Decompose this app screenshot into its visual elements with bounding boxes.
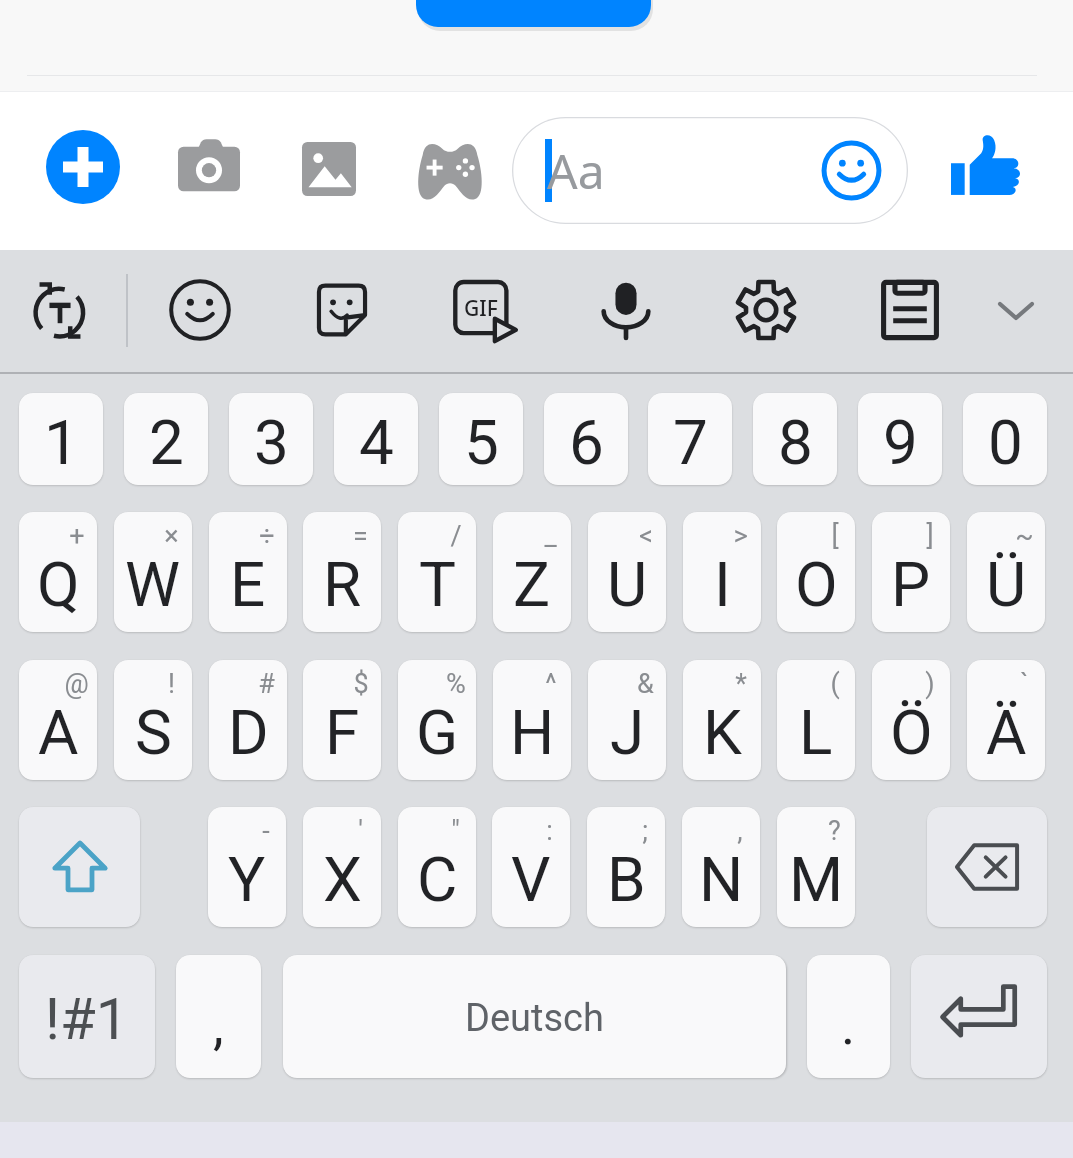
button[interactable]: 5 bbox=[439, 393, 523, 485]
staticText: T bbox=[419, 548, 456, 621]
button[interactable]: 6 bbox=[544, 393, 628, 485]
button[interactable]: Settings bbox=[726, 270, 806, 350]
staticText: F bbox=[325, 696, 360, 769]
button[interactable]: Clipboard bbox=[870, 270, 950, 350]
button[interactable]: % bbox=[398, 660, 476, 780]
staticText: 4 bbox=[359, 406, 394, 479]
button[interactable]: . bbox=[807, 955, 890, 1078]
button[interactable]: ^ bbox=[493, 660, 571, 780]
staticText: > bbox=[733, 520, 748, 552]
button[interactable]: 8 bbox=[753, 393, 837, 485]
button[interactable]: ~ bbox=[967, 512, 1045, 632]
button[interactable]: # bbox=[209, 660, 287, 780]
staticText: H bbox=[510, 696, 555, 769]
button[interactable]: " bbox=[398, 807, 476, 927]
staticText: Ä bbox=[986, 696, 1027, 769]
staticText: & bbox=[637, 668, 654, 700]
button[interactable]: / bbox=[398, 512, 476, 632]
button[interactable]: Voice input bbox=[586, 270, 666, 350]
button[interactable]: < bbox=[588, 512, 666, 632]
button[interactable]: Translate bbox=[20, 270, 100, 350]
staticText: Aa bbox=[547, 138, 605, 203]
button[interactable]: Emoji bbox=[821, 140, 882, 201]
button[interactable]: $ bbox=[303, 660, 381, 780]
staticText: × bbox=[164, 520, 179, 552]
button[interactable]: 3 bbox=[229, 393, 313, 485]
button[interactable]: Games bbox=[411, 130, 489, 208]
button[interactable]: Emoji bbox=[160, 270, 240, 350]
staticText: ` bbox=[1020, 668, 1029, 700]
button[interactable]: 4 bbox=[334, 393, 418, 485]
staticText: : bbox=[546, 815, 553, 847]
staticText: M bbox=[789, 843, 844, 916]
staticText: " bbox=[451, 815, 460, 847]
staticText: _ bbox=[544, 520, 557, 552]
button[interactable]: ] bbox=[872, 512, 950, 632]
button[interactable]: _ bbox=[493, 512, 571, 632]
button[interactable]: Aa bbox=[512, 117, 908, 224]
button[interactable]: Stickers bbox=[302, 270, 382, 350]
button[interactable]: GIF bbox=[444, 270, 524, 350]
staticText: Deutsch bbox=[465, 996, 604, 1041]
staticText: * bbox=[735, 668, 747, 700]
staticText: U bbox=[607, 548, 648, 621]
button[interactable]: 1 bbox=[19, 393, 103, 485]
button[interactable]: ` bbox=[967, 660, 1045, 780]
staticText: L bbox=[799, 696, 833, 769]
staticText: 6 bbox=[569, 406, 604, 479]
button[interactable]: Camera bbox=[170, 130, 248, 208]
staticText: X bbox=[323, 843, 362, 916]
button[interactable]: × bbox=[114, 512, 192, 632]
button[interactable]: = bbox=[303, 512, 381, 632]
staticText: Z bbox=[513, 548, 551, 621]
button[interactable]: [ bbox=[777, 512, 855, 632]
staticText: # bbox=[258, 668, 275, 700]
button[interactable]: !#1 bbox=[19, 955, 155, 1078]
staticText: N bbox=[699, 843, 744, 916]
button[interactable] bbox=[911, 955, 1047, 1078]
button[interactable] bbox=[927, 807, 1047, 927]
staticText: G bbox=[416, 696, 459, 769]
staticText: @ bbox=[64, 668, 89, 700]
button[interactable]: ; bbox=[587, 807, 665, 927]
button[interactable]: Send like bbox=[944, 126, 1030, 212]
button[interactable]: ? bbox=[777, 807, 855, 927]
button[interactable]: & bbox=[588, 660, 666, 780]
staticText: , bbox=[213, 994, 224, 1057]
staticText: K bbox=[703, 696, 742, 769]
staticText: + bbox=[69, 520, 85, 552]
button[interactable]: * bbox=[683, 660, 761, 780]
staticText: ' bbox=[358, 815, 363, 847]
staticText: 1 bbox=[44, 406, 79, 479]
button[interactable]: 7 bbox=[648, 393, 732, 485]
button[interactable]: Gallery bbox=[290, 130, 368, 208]
staticText: $ bbox=[353, 668, 369, 700]
button[interactable]: More actions bbox=[46, 130, 120, 204]
staticText: Y bbox=[228, 843, 266, 916]
staticText: ! bbox=[168, 668, 175, 700]
button[interactable]: ) bbox=[872, 660, 950, 780]
button[interactable]: Hide keyboard bbox=[976, 270, 1056, 350]
staticText: . bbox=[841, 994, 856, 1057]
button[interactable]: - bbox=[208, 807, 286, 927]
button[interactable]: @ bbox=[19, 660, 97, 780]
button[interactable]: 2 bbox=[124, 393, 208, 485]
button[interactable]: Deutsch bbox=[283, 955, 786, 1078]
staticText: A bbox=[38, 696, 79, 769]
button[interactable]: 0 bbox=[963, 393, 1047, 485]
button[interactable]: : bbox=[492, 807, 570, 927]
button[interactable]: ' bbox=[303, 807, 381, 927]
staticText: Ö bbox=[890, 696, 933, 769]
button[interactable] bbox=[19, 807, 140, 927]
staticText: 5 bbox=[464, 406, 499, 479]
button[interactable]: ! bbox=[114, 660, 192, 780]
button[interactable]: , bbox=[176, 955, 261, 1078]
button[interactable]: + bbox=[19, 512, 97, 632]
staticText: O bbox=[795, 548, 838, 621]
button[interactable]: > bbox=[683, 512, 761, 632]
staticText: Ü bbox=[986, 548, 1027, 621]
button[interactable]: , bbox=[682, 807, 760, 927]
button[interactable]: ÷ bbox=[209, 512, 287, 632]
button[interactable]: ( bbox=[777, 660, 855, 780]
button[interactable]: 9 bbox=[858, 393, 942, 485]
